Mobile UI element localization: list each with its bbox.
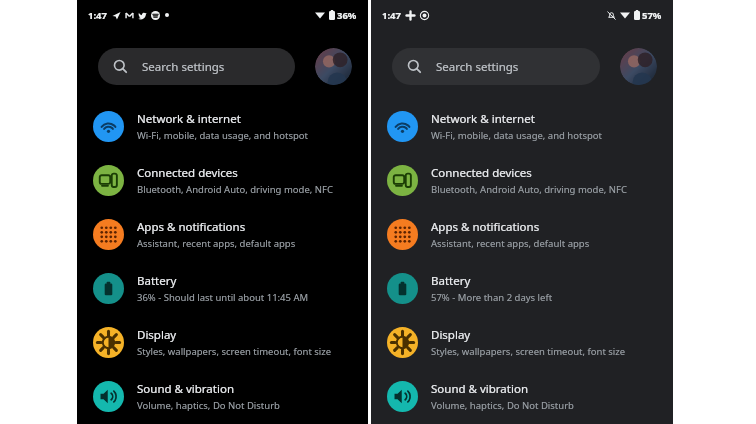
button[interactable]: Apps & notifications (77, 207, 368, 261)
button[interactable]: Apps & notifications (371, 207, 673, 261)
staticText: Sound & vibration (431, 381, 528, 397)
button[interactable]: Sound & vibration (77, 369, 368, 423)
staticText: 1:47 (88, 9, 107, 22)
button[interactable]: Account (620, 48, 657, 85)
staticText: 36% (337, 9, 357, 22)
button[interactable]: Network & internet (371, 99, 673, 153)
staticText: Assistant, recent apps, default apps (431, 237, 590, 250)
staticText: Display (431, 327, 471, 343)
staticText: Battery (431, 273, 471, 289)
staticText: Search settings (142, 59, 225, 75)
button[interactable]: Network & internet (77, 99, 368, 153)
button[interactable]: Account (315, 48, 352, 85)
staticText: Battery (137, 273, 177, 289)
staticText: Network & internet (431, 111, 535, 127)
button[interactable]: Connected devices (77, 153, 368, 207)
staticText: Wi-Fi, mobile, data usage, and hotspot (431, 129, 602, 142)
staticText: Search settings (436, 59, 519, 75)
button[interactable]: Search settings (392, 48, 600, 85)
staticText: Network & internet (137, 111, 241, 127)
staticText: Assistant, recent apps, default apps (137, 237, 296, 250)
staticText: Apps & notifications (137, 219, 246, 235)
staticText: Sound & vibration (137, 381, 234, 397)
button[interactable]: Battery (371, 261, 673, 315)
staticText: Styles, wallpapers, screen timeout, font… (137, 345, 332, 358)
staticText: Connected devices (431, 165, 532, 181)
staticText: Wi-Fi, mobile, data usage, and hotspot (137, 129, 308, 142)
staticText: Volume, haptics, Do Not Disturb (137, 399, 280, 412)
staticText: 57% - More than 2 days left (431, 291, 553, 304)
staticText: Connected devices (137, 165, 238, 181)
staticText: 1:47 (382, 9, 401, 22)
staticText: Styles, wallpapers, screen timeout, font… (431, 345, 626, 358)
button[interactable]: Connected devices (371, 153, 673, 207)
button[interactable]: Display (371, 315, 673, 369)
staticText: Bluetooth, Android Auto, driving mode, N… (137, 183, 333, 196)
button[interactable]: Search settings (98, 48, 295, 85)
staticText: Volume, haptics, Do Not Disturb (431, 399, 574, 412)
button[interactable]: Sound & vibration (371, 369, 673, 423)
staticText: Apps & notifications (431, 219, 540, 235)
staticText: 57% (642, 9, 662, 22)
button[interactable]: Display (77, 315, 368, 369)
staticText: Bluetooth, Android Auto, driving mode, N… (431, 183, 627, 196)
button[interactable]: Battery (77, 261, 368, 315)
staticText: Display (137, 327, 177, 343)
staticText: 36% - Should last until about 11:45 AM (137, 291, 309, 304)
